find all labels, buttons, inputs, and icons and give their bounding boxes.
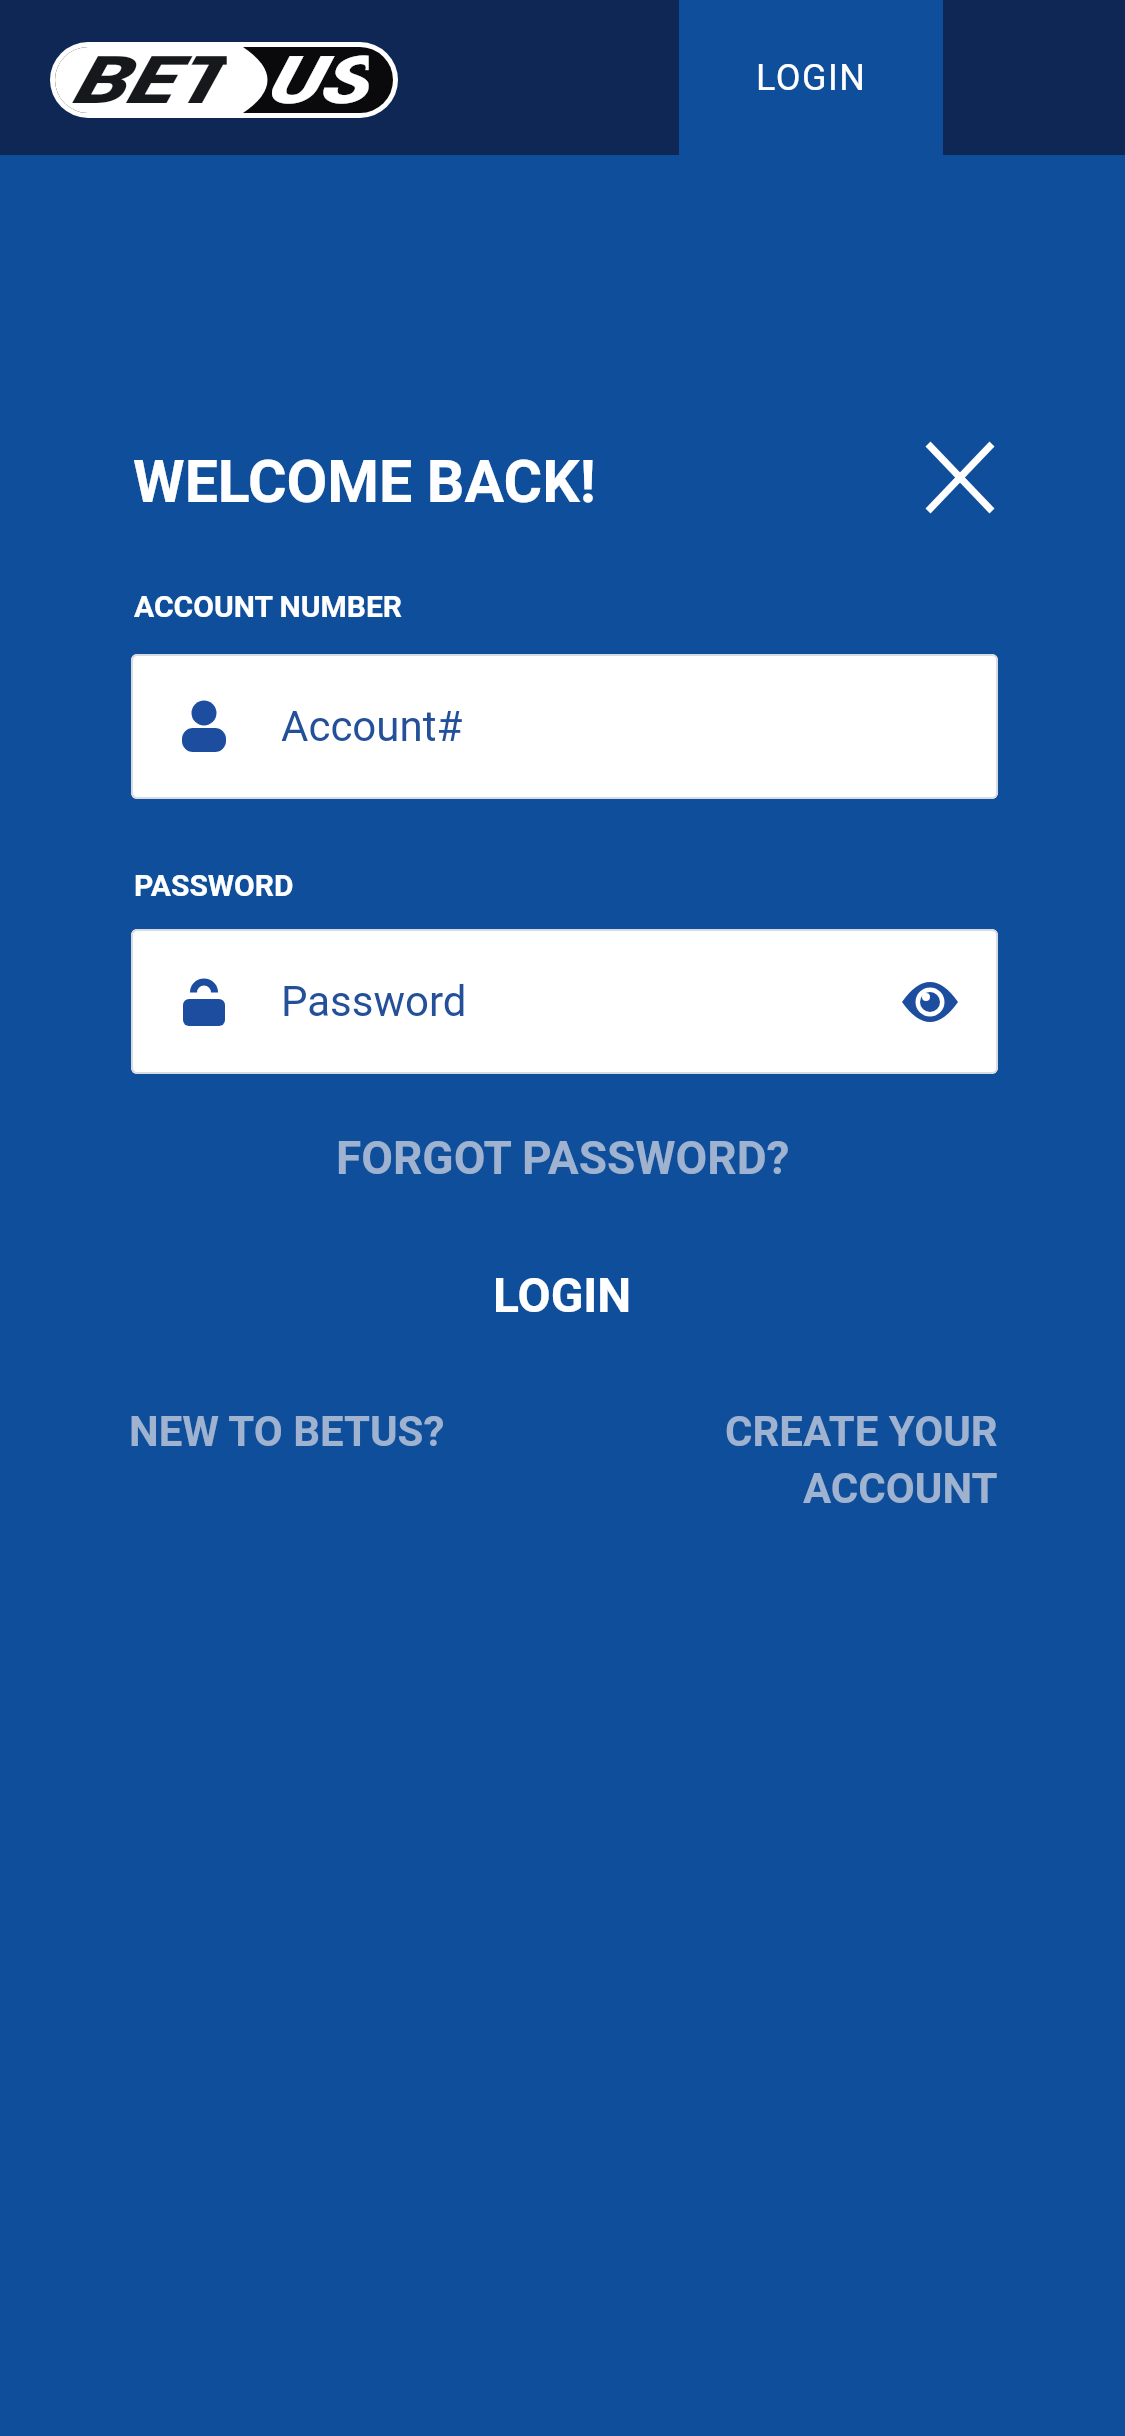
button[interactable]: FORGOT PASSWORD? [336,1131,790,1185]
staticText: Account# [281,702,463,751]
staticText: Password [281,977,467,1026]
staticText: NEW TO BETUS? [129,1407,445,1456]
staticText: ACCOUNT NUMBER [134,589,402,624]
button[interactable]: LOGIN [679,0,943,155]
staticText: WELCOME BACK! [133,447,596,516]
button[interactable] [928,444,992,511]
staticText: LOGIN [756,57,867,99]
button[interactable]: ACCOUNT [803,1464,998,1513]
staticText: BET [72,42,227,118]
button[interactable]: Account# [131,654,998,799]
button[interactable]: CREATE YOUR [725,1407,998,1456]
staticText: US [265,42,369,118]
button[interactable] [902,982,958,1022]
button[interactable]: Password [131,929,998,1074]
button[interactable]: LOGIN [493,1267,632,1323]
staticText: PASSWORD [134,868,294,903]
